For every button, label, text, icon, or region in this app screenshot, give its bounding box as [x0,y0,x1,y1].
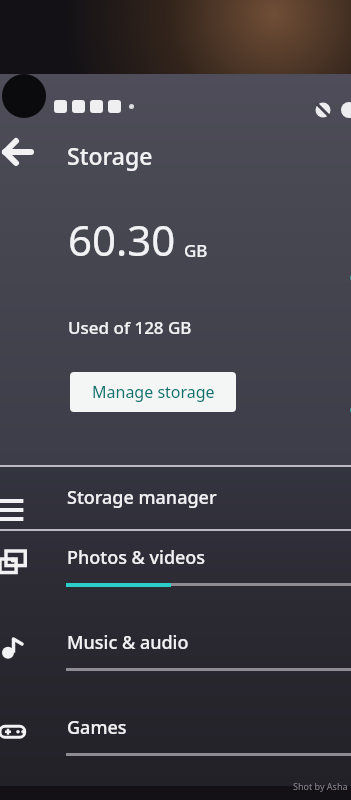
staticText: Manage storage [92,381,215,403]
staticText: 60.30 [68,211,176,268]
staticText: Games [67,715,127,740]
staticText: Storage manager [67,485,217,510]
staticText: Shot by Asha [293,780,348,792]
staticText: Photos & videos [67,545,206,570]
button[interactable]: Storage manager [0,467,351,529]
button[interactable]: Photos & videos [0,531,351,616]
button[interactable]: Music & audio [0,616,351,701]
button[interactable]: Manage storage [70,372,236,412]
button[interactable]: Back [0,130,40,174]
staticText: GB [184,239,208,262]
staticText: Storage [67,140,153,171]
button[interactable]: Games [0,701,351,786]
staticText: Used of 128 GB [68,316,192,339]
staticText: Music & audio [67,630,189,655]
